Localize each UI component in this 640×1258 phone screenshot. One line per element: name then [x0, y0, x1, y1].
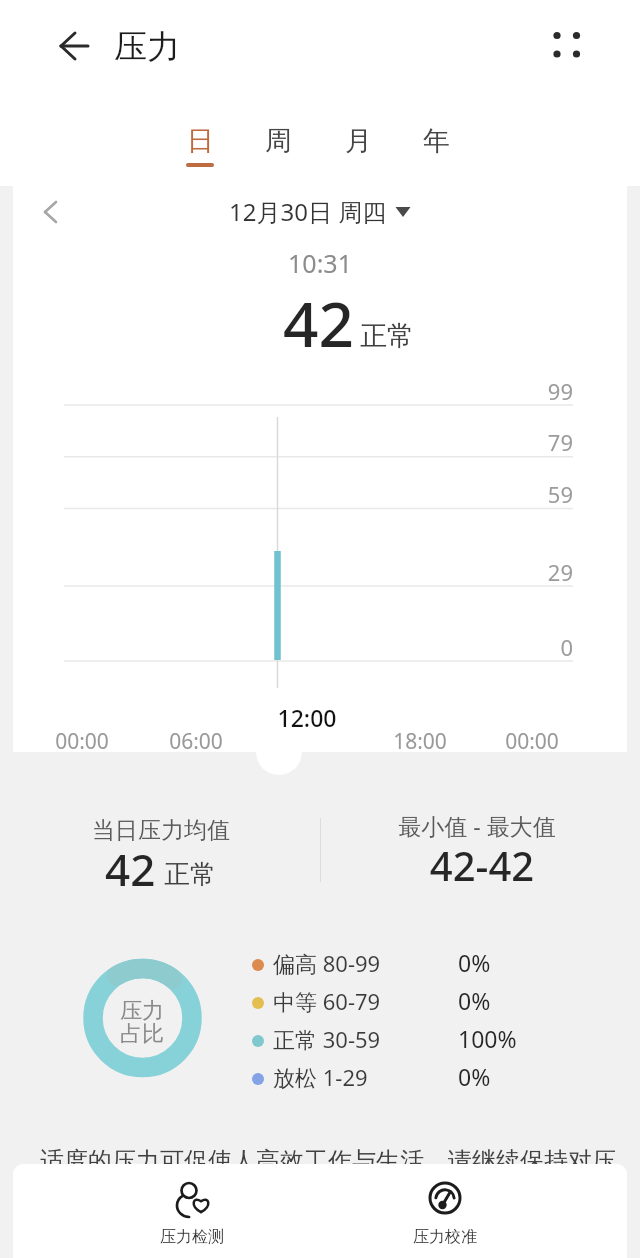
staticText: 当日压力均值 [51, 816, 271, 845]
button[interactable]: 12月30日 周四 [0, 195, 640, 228]
staticText: 06:00 [156, 727, 236, 756]
button[interactable]: 年 [406, 118, 466, 180]
staticText: 0% [458, 947, 491, 978]
staticText: 最小值 - 最大值 [347, 810, 607, 841]
staticText: 0% [458, 1061, 491, 1092]
staticText: 放松 1-29 [273, 1062, 368, 1092]
staticText: 42 [283, 281, 354, 365]
button[interactable]: 压力校准 [333, 1164, 560, 1258]
staticText: 正常 [360, 319, 414, 353]
button[interactable] [40, 25, 100, 70]
staticText: 18:00 [380, 727, 460, 756]
staticText: 00:00 [492, 727, 572, 756]
staticText: 占比 [82, 1020, 202, 1048]
staticText: 59 [513, 479, 573, 509]
staticText: 0% [458, 985, 491, 1016]
staticText: 42 [105, 839, 156, 899]
staticText: 压力校准 [413, 1227, 477, 1247]
staticText: 12月30日 周四 [229, 195, 387, 228]
staticText: 日 [187, 124, 214, 158]
staticText: 10:31 [0, 246, 640, 280]
staticText: 42-42 [352, 838, 612, 892]
staticText: 年 [423, 124, 450, 158]
staticText: 压力检测 [160, 1227, 224, 1247]
staticText: 0 [513, 632, 573, 662]
staticText: 正常 [164, 858, 216, 891]
staticText: 中等 60-79 [273, 986, 381, 1016]
staticText: 周 [265, 124, 292, 158]
button[interactable]: 周 [248, 118, 308, 180]
button[interactable]: 压力检测 [93, 1164, 320, 1258]
button[interactable]: 日 [170, 118, 230, 180]
staticText: 99 [513, 376, 573, 406]
staticText: 12:00 [267, 702, 347, 733]
staticText: 00:00 [42, 727, 122, 756]
staticText: 月 [345, 124, 372, 158]
staticText: 29 [513, 557, 573, 587]
button[interactable] [536, 15, 596, 75]
staticText: 偏高 80-99 [273, 948, 381, 978]
staticText: 适度的压力可促使人高效工作与生活，请继续保持对压 [40, 1146, 616, 1176]
staticText: 79 [513, 427, 573, 457]
button[interactable]: 月 [328, 118, 388, 180]
staticText: 100% [458, 1023, 517, 1054]
staticText: 压力 [82, 997, 202, 1025]
staticText: 正常 30-59 [273, 1024, 381, 1054]
button[interactable] [30, 192, 70, 232]
staticText: 压力 [114, 26, 180, 68]
